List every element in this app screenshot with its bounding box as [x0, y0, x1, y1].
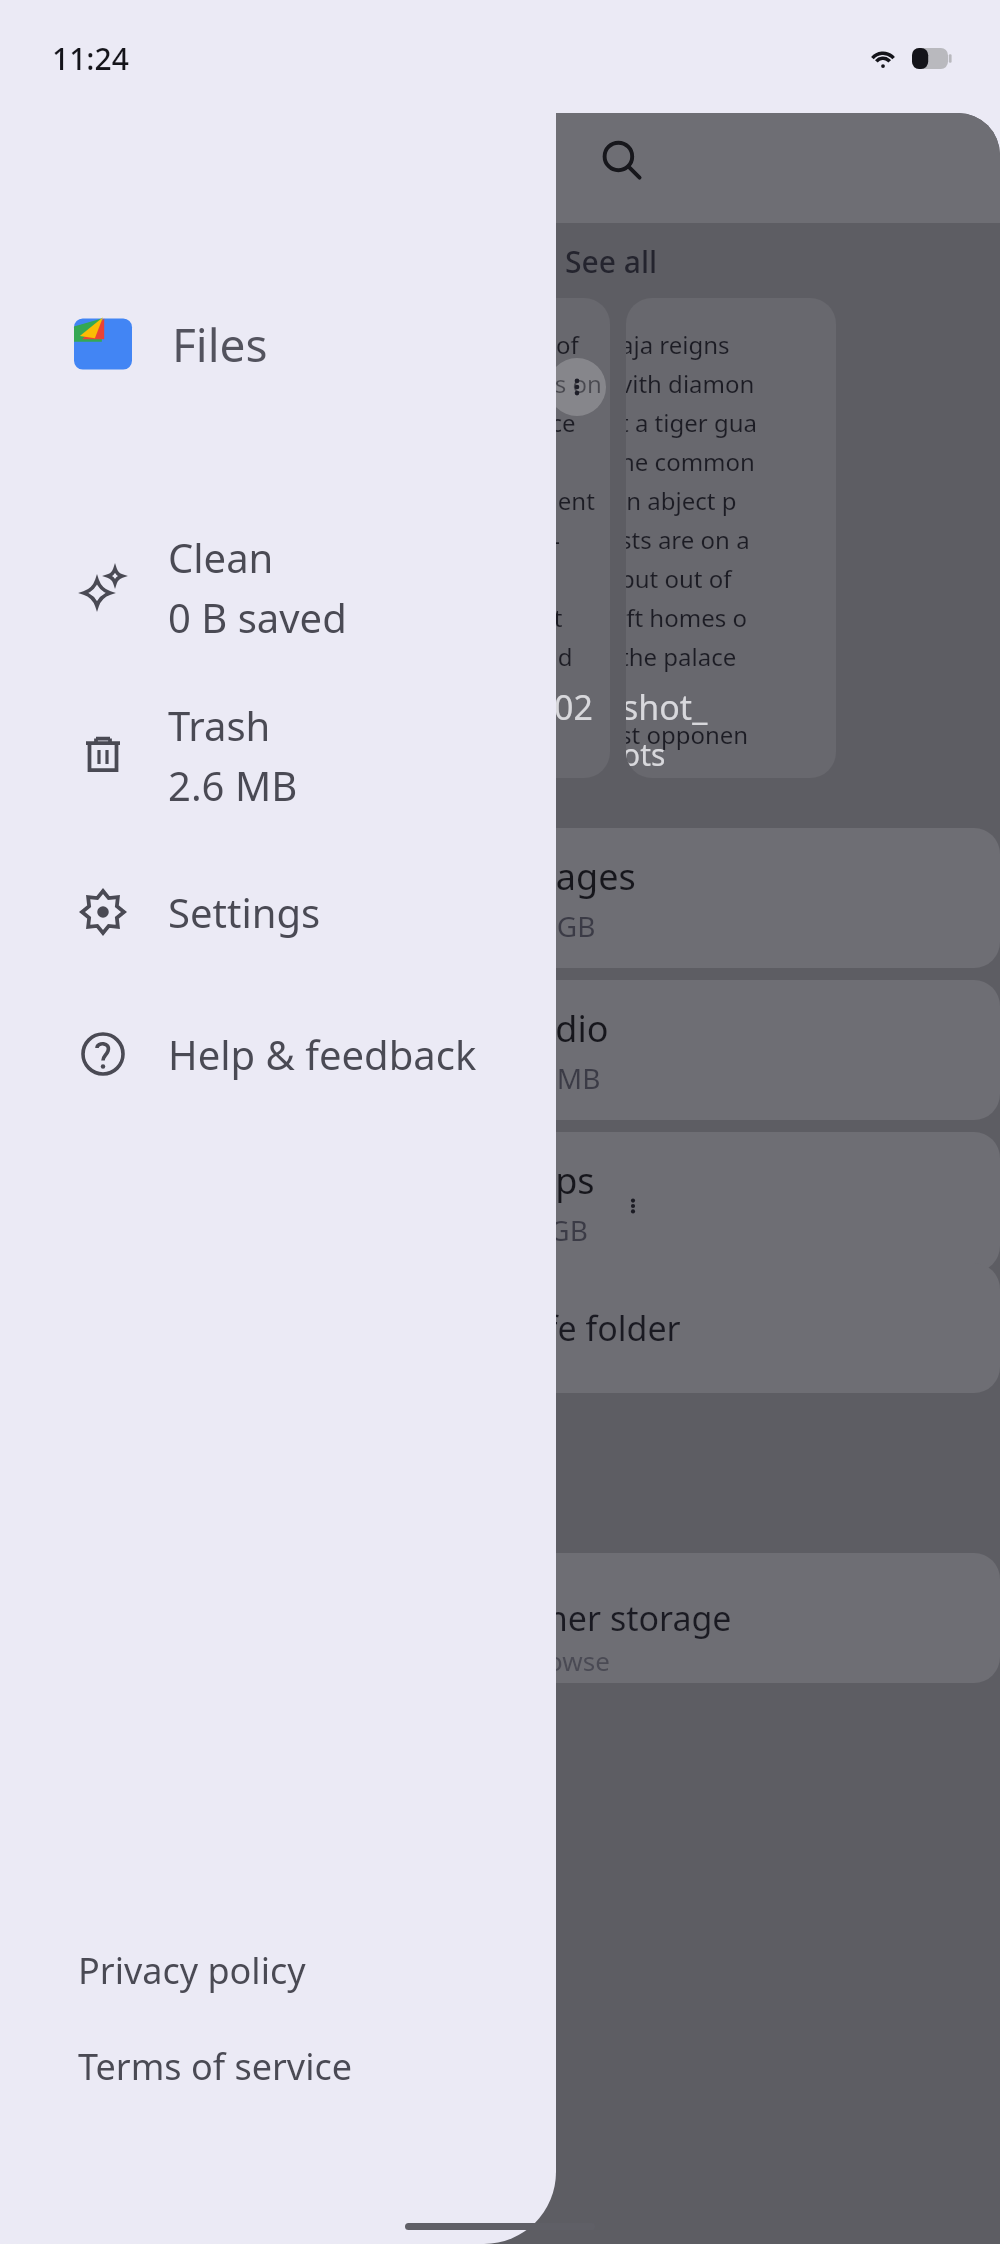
staticText: 2.8 GB — [510, 907, 596, 945]
staticText: ots — [626, 734, 666, 775]
staticText: shot_ — [626, 684, 708, 730]
staticText: Apps — [510, 1156, 595, 1205]
staticText: 2.6 MB — [168, 758, 298, 812]
button[interactable]: or are put out of sight an — [400, 298, 610, 778]
staticText: Terms of service — [78, 2042, 353, 2091]
button[interactable]: Other storage — [400, 1553, 1000, 1683]
staticText: Settings — [168, 885, 321, 939]
staticText: Other storage — [508, 1595, 732, 1641]
staticText: Audio — [510, 1004, 609, 1053]
staticText: biggest opponent for the — [400, 484, 604, 517]
button[interactable]: Trash — [0, 690, 556, 820]
staticText: losed down and his books — [400, 640, 604, 673]
staticText: in abject p — [626, 484, 737, 517]
button[interactable]: Terms of service — [0, 2018, 556, 2114]
staticText: or are put out of sight an — [400, 328, 604, 361]
staticText: sts are on a — [626, 523, 750, 556]
staticText: , Udayan (Soumitra — [400, 562, 604, 595]
button[interactable]: Safe folder — [400, 1263, 1000, 1393]
staticText: Browse — [520, 1643, 610, 1678]
staticText: Files — [172, 313, 268, 376]
staticText: Safe folder — [508, 1305, 681, 1351]
button[interactable]: Clean — [0, 522, 556, 652]
staticText: 3.3 MB — [510, 1059, 601, 1097]
button[interactable]: Help & feedback — [0, 996, 556, 1112]
staticText: put out of — [626, 562, 732, 595]
button[interactable]: Privacy policy — [0, 1922, 556, 2018]
button[interactable]: aja reigns — [626, 298, 836, 778]
staticText: aja reigns — [626, 328, 730, 361]
staticText: t a tiger gua — [626, 406, 757, 439]
staticText: 0 B saved — [168, 590, 347, 644]
staticText: Images — [510, 852, 636, 901]
staticText: Help & feedback — [168, 1027, 477, 1081]
staticText: 11:24 — [52, 38, 129, 79]
staticText: See all — [565, 241, 658, 282]
staticText: jee). The tyrant gets his littl — [400, 601, 604, 634]
staticText: the palace — [626, 640, 737, 673]
button[interactable]: Settings — [0, 854, 556, 970]
staticText: Clean — [168, 530, 274, 584]
staticText: Privacy policy — [78, 1946, 306, 1995]
button[interactable]: Audio — [400, 980, 1000, 1120]
staticText: eenshot_2025. — [400, 684, 600, 730]
button[interactable]: More options — [548, 358, 606, 416]
staticText: ift homes o — [626, 601, 747, 634]
staticText: vith diamon — [626, 367, 755, 400]
button[interactable]: Images — [400, 828, 1000, 968]
staticText: king is a small-time school — [400, 523, 604, 556]
staticText: st opponen — [626, 718, 749, 751]
staticText: akeshift homes on the w — [400, 367, 604, 400]
staticText: up to the palace razed. — [400, 406, 604, 439]
staticText: he common — [626, 445, 755, 478]
staticText: Trash — [168, 698, 271, 752]
button[interactable]: Apps — [400, 1132, 1000, 1272]
staticText: 35 GB — [510, 1211, 588, 1249]
